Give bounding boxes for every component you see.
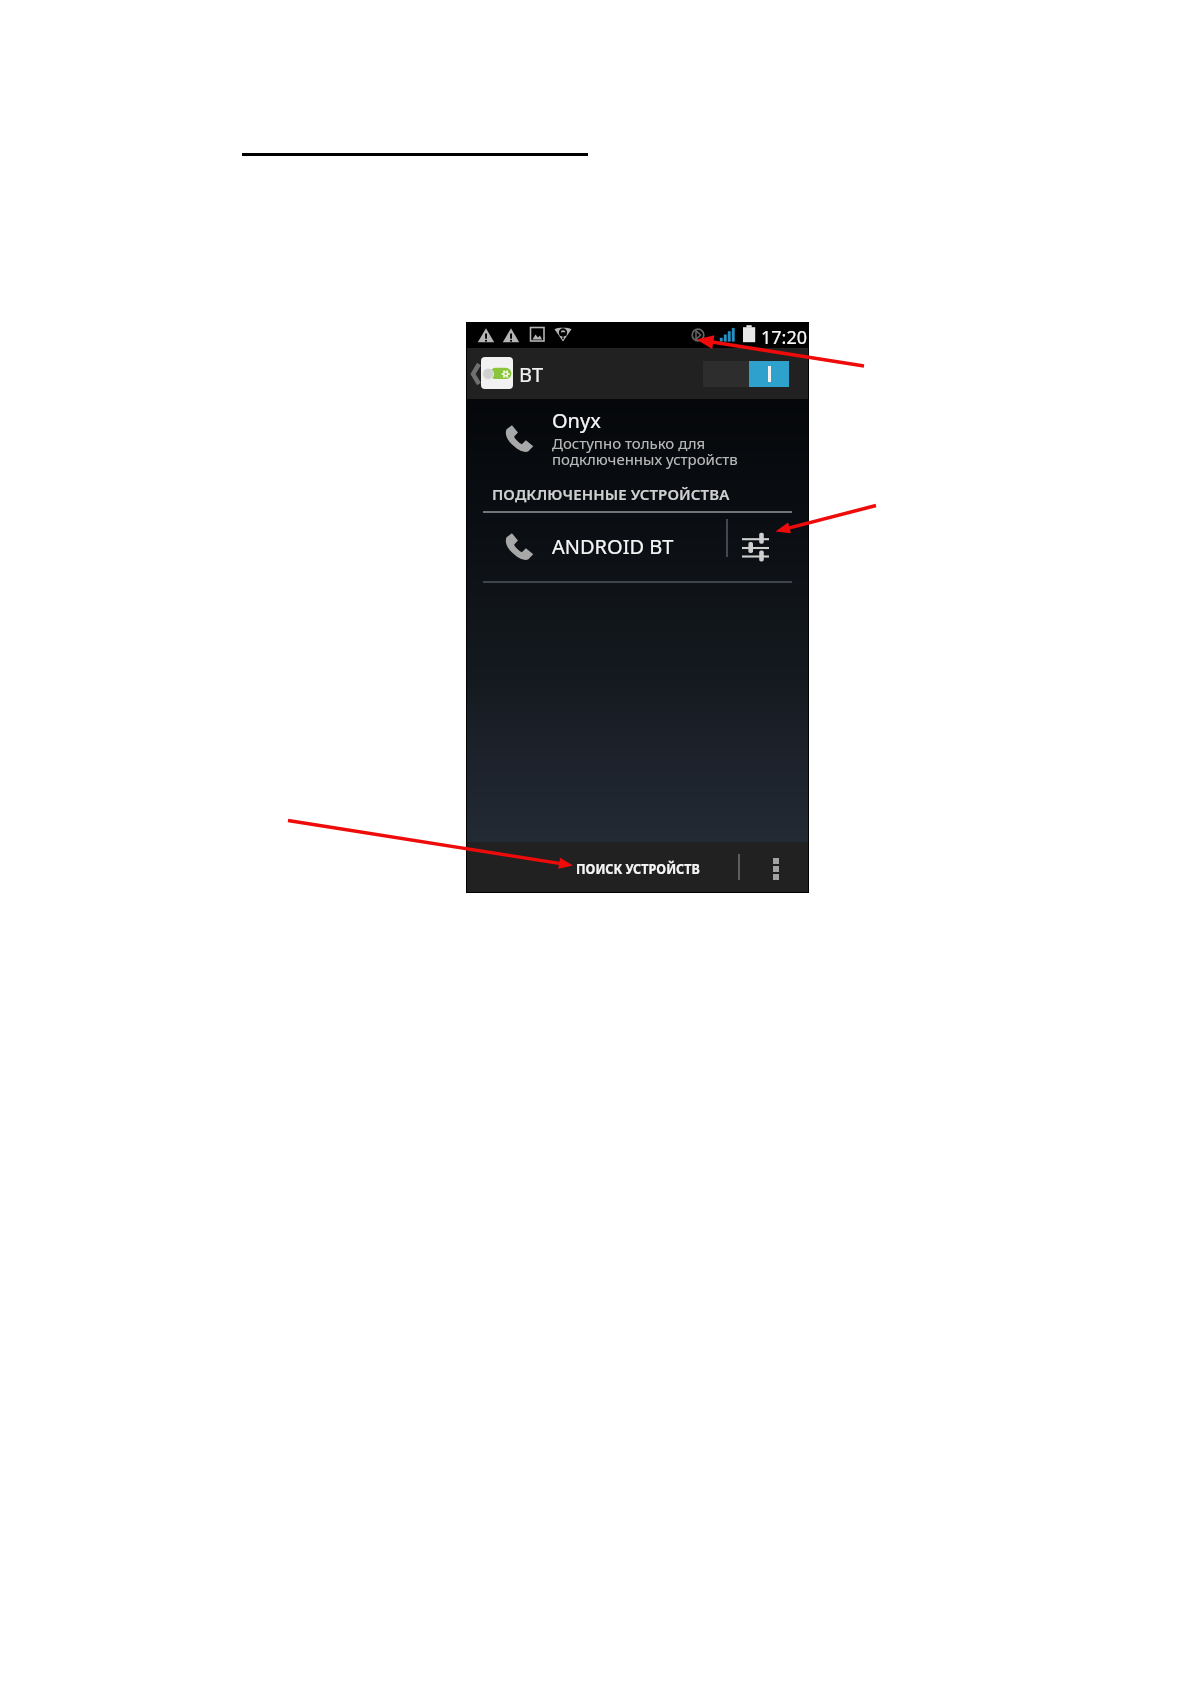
staticText: BT	[519, 361, 544, 388]
button[interactable]: Onyx	[466, 399, 809, 487]
staticText: Onyx	[552, 407, 601, 434]
staticText: ПОДКЛЮЧЕННЫЕ УСТРОЙСТВА	[492, 484, 730, 504]
staticText: ANDROID BT	[552, 533, 674, 560]
button[interactable]: Device settings	[728, 513, 809, 581]
button[interactable]: More options	[740, 842, 809, 893]
button[interactable]: ANDROID BT	[466, 513, 809, 581]
staticText: 17:20	[761, 325, 808, 350]
staticText: Доступно только для подключенных устройс…	[552, 433, 738, 469]
button[interactable]: Bluetooth switch, on	[703, 361, 789, 387]
button[interactable]: Navigate up	[469, 359, 483, 389]
staticText: ПОИСК УСТРОЙСТВ	[576, 858, 700, 878]
button[interactable]: ПОИСК УСТРОЙСТВ	[466, 842, 739, 893]
